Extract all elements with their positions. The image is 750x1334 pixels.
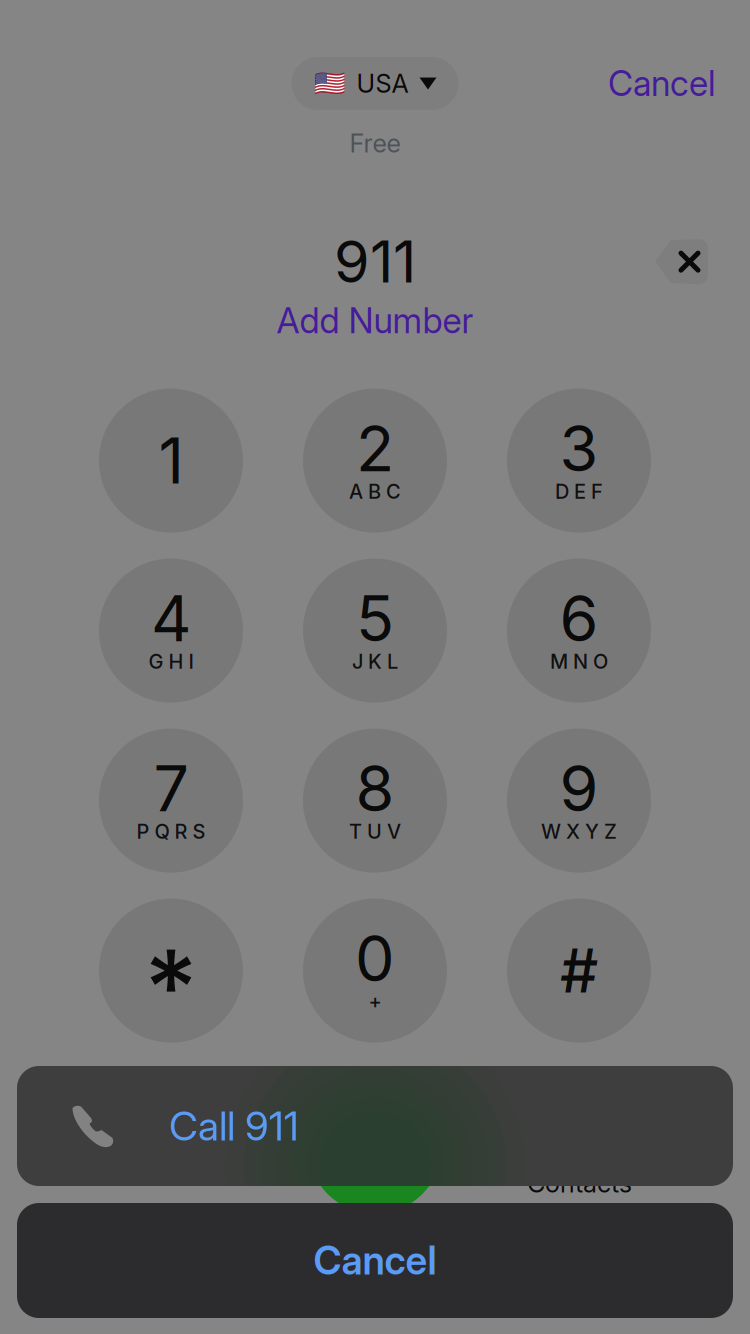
- staticText: P Q R S: [136, 819, 205, 844]
- staticText: G H I: [148, 649, 193, 674]
- button[interactable]: Cancel: [17, 1203, 733, 1318]
- staticText: Call 911: [169, 1102, 299, 1150]
- button[interactable]: Star: [99, 899, 243, 1043]
- button[interactable]: #: [507, 899, 651, 1043]
- button[interactable]: 7: [99, 729, 243, 873]
- staticText: 2: [356, 411, 394, 486]
- staticText: W X Y Z: [541, 819, 617, 844]
- staticText: #: [560, 934, 598, 1007]
- staticText: 6: [559, 581, 598, 656]
- button[interactable]: Contacts: [527, 1080, 632, 1214]
- button[interactable]: 1: [99, 389, 243, 533]
- staticText: 911: [334, 227, 416, 296]
- staticText: 8: [355, 751, 394, 826]
- staticText: T U V: [349, 819, 401, 844]
- staticText: 3: [559, 411, 598, 486]
- button[interactable]: 2: [303, 389, 447, 533]
- staticText: J K L: [352, 649, 398, 674]
- button[interactable]: 6: [507, 559, 651, 703]
- button[interactable]: Call: [308, 1080, 442, 1214]
- staticText: 9: [559, 751, 598, 826]
- button[interactable]: Cancel: [594, 52, 730, 114]
- button[interactable]: 4: [99, 559, 243, 703]
- button[interactable]: 8: [303, 729, 447, 873]
- button[interactable]: 🇺🇸: [291, 57, 458, 110]
- staticText: M N O: [550, 649, 608, 674]
- staticText: 5: [356, 581, 394, 656]
- staticText: 🇺🇸: [313, 69, 345, 98]
- staticText: Free: [349, 128, 400, 159]
- button[interactable]: Delete: [655, 239, 708, 284]
- button[interactable]: 0: [303, 899, 447, 1043]
- staticText: 4: [151, 581, 191, 656]
- staticText: USA: [356, 68, 408, 99]
- staticText: D E F: [555, 479, 603, 504]
- button[interactable]: 9: [507, 729, 651, 873]
- staticText: Cancel: [608, 62, 716, 104]
- staticText: 1: [158, 423, 183, 498]
- staticText: +: [368, 989, 381, 1014]
- button[interactable]: Call 911: [17, 1066, 733, 1186]
- staticText: Add Number: [276, 300, 473, 342]
- staticText: Contacts: [527, 1168, 632, 1199]
- button[interactable]: 3: [507, 389, 651, 533]
- staticText: 0: [355, 921, 395, 996]
- staticText: 7: [153, 751, 188, 826]
- button[interactable]: Add Number: [276, 300, 473, 342]
- staticText: Cancel: [313, 1237, 436, 1284]
- staticText: A B C: [349, 479, 401, 504]
- button[interactable]: 5: [303, 559, 447, 703]
